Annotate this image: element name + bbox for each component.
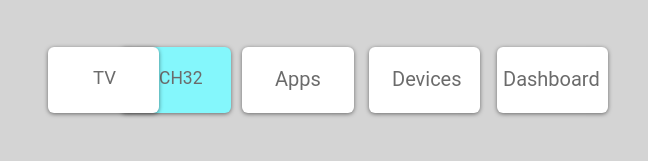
button[interactable]: TV (48, 47, 159, 113)
button[interactable]: Apps (242, 47, 354, 113)
staticText: CH32 (159, 68, 203, 89)
staticText: Devices (392, 67, 462, 90)
staticText: Apps (275, 67, 321, 90)
staticText: TV (93, 67, 116, 89)
staticText: Dashboard (503, 67, 600, 90)
button[interactable]: CH32 (120, 47, 231, 113)
button[interactable]: Devices (369, 47, 480, 113)
button[interactable]: Dashboard (497, 47, 608, 113)
